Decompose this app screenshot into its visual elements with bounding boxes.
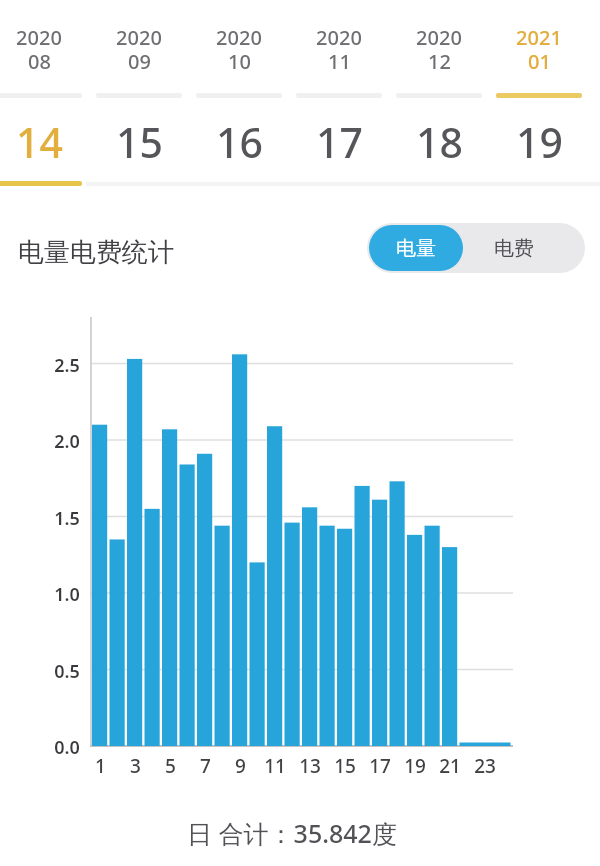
button[interactable]: 2020 [289, 8, 389, 98]
staticText: 14 [16, 114, 63, 166]
staticText: 电费 [494, 236, 534, 261]
staticText: 2021 [516, 24, 562, 51]
button[interactable]: 2020 [0, 8, 89, 98]
button[interactable]: 19 [489, 114, 589, 166]
staticText: 9 [235, 753, 246, 777]
staticText: 2020 [216, 24, 262, 51]
button[interactable]: 电量 [369, 225, 463, 271]
staticText: 18 [416, 114, 463, 166]
staticText: 08 [28, 48, 51, 75]
staticText: 09 [128, 48, 151, 75]
button[interactable]: 14 [0, 114, 89, 166]
staticText: 15 [334, 753, 356, 777]
staticText: 23 [474, 753, 496, 777]
staticText: 16 [216, 114, 263, 166]
button[interactable]: 16 [189, 114, 289, 166]
staticText: 电量电费统计 [18, 236, 174, 269]
staticText: 1.5 [54, 506, 80, 528]
staticText: 11 [264, 753, 286, 777]
staticText: 2.5 [54, 353, 80, 375]
staticText: 2020 [116, 24, 162, 51]
button[interactable]: 2021 [489, 8, 589, 98]
button[interactable]: 17 [289, 114, 389, 166]
staticText: 5 [165, 753, 176, 777]
staticText: 日 合计：35.842度 [187, 816, 397, 848]
staticText: 01 [528, 48, 551, 75]
button[interactable]: 2020 [389, 8, 489, 98]
button[interactable]: 电费 [465, 223, 563, 273]
staticText: 1.0 [54, 582, 80, 604]
staticText: 21 [439, 753, 461, 777]
staticText: 0.0 [54, 735, 80, 757]
staticText: 0.5 [54, 659, 80, 681]
staticText: 2020 [16, 24, 62, 51]
button[interactable]: 2020 [189, 8, 289, 98]
staticText: 2.0 [54, 429, 80, 451]
staticText: 2020 [416, 24, 462, 51]
button[interactable]: 18 [389, 114, 489, 166]
staticText: 7 [200, 753, 211, 777]
button[interactable]: 2020 [89, 8, 189, 98]
staticText: 19 [516, 114, 563, 166]
staticText: 10 [228, 48, 251, 75]
staticText: 1 [95, 753, 106, 777]
staticText: 2020 [316, 24, 362, 51]
staticText: 11 [328, 48, 351, 75]
staticText: 13 [299, 753, 321, 777]
staticText: 电量 [396, 236, 436, 261]
staticText: 17 [316, 114, 363, 166]
staticText: 15 [116, 114, 163, 166]
button[interactable]: 15 [89, 114, 189, 166]
staticText: 12 [428, 48, 451, 75]
staticText: 19 [404, 753, 426, 777]
staticText: 3 [130, 753, 141, 777]
staticText: 17 [369, 753, 391, 777]
